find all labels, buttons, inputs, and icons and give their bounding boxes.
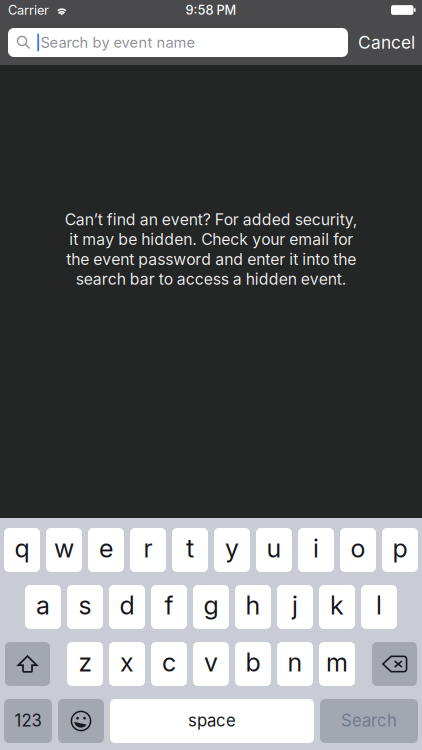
staticText: h: [245, 590, 260, 621]
staticText: Can’t find an event? For added security,…: [64, 210, 357, 288]
staticText: 123: [14, 710, 41, 731]
button[interactable]: x: [109, 642, 145, 686]
staticText: q: [14, 533, 29, 564]
button[interactable]: o: [340, 528, 376, 572]
button[interactable]: space: [110, 699, 314, 743]
staticText: p: [392, 533, 407, 564]
button[interactable]: y: [214, 528, 250, 572]
staticText: b: [245, 647, 260, 678]
button[interactable]: s: [67, 585, 103, 629]
staticText: o: [350, 533, 365, 564]
staticText: f: [164, 590, 173, 621]
staticText: Carrier: [8, 2, 49, 18]
staticText: k: [330, 590, 344, 621]
button[interactable]: w: [46, 528, 82, 572]
button[interactable]: r: [130, 528, 166, 572]
button[interactable]: h: [235, 585, 271, 629]
button[interactable]: g: [193, 585, 229, 629]
button[interactable]: d: [109, 585, 145, 629]
button[interactable]: Shift: [5, 642, 50, 686]
staticText: space: [188, 710, 236, 731]
button[interactable]: b: [235, 642, 271, 686]
button[interactable]: Cancel: [358, 27, 415, 57]
button[interactable]: l: [361, 585, 397, 629]
staticText: d: [119, 590, 134, 621]
staticText: x: [120, 647, 134, 678]
button[interactable]: n: [277, 642, 313, 686]
button[interactable]: u: [256, 528, 292, 572]
button[interactable]: v: [193, 642, 229, 686]
button[interactable]: t: [172, 528, 208, 572]
button[interactable]: a: [25, 585, 61, 629]
staticText: l: [376, 590, 382, 621]
button[interactable]: 123: [4, 699, 52, 743]
staticText: j: [292, 590, 298, 621]
staticText: Cancel: [358, 32, 415, 53]
button[interactable]: c: [151, 642, 187, 686]
staticText: e: [99, 533, 113, 564]
staticText: u: [266, 533, 281, 564]
staticText: a: [36, 590, 50, 621]
button[interactable]: f: [151, 585, 187, 629]
staticText: v: [204, 647, 218, 678]
staticText: n: [287, 647, 302, 678]
staticText: Search by event name: [41, 34, 196, 51]
staticText: w: [54, 533, 74, 564]
staticText: r: [143, 533, 152, 564]
staticText: z: [78, 647, 91, 678]
button[interactable]: Emoji keyboard: [58, 699, 104, 743]
staticText: i: [313, 533, 319, 564]
staticText: s: [78, 590, 91, 621]
button[interactable]: k: [319, 585, 355, 629]
staticText: 9:58 PM: [185, 2, 236, 18]
button[interactable]: Search: [320, 699, 418, 743]
staticText: t: [186, 533, 194, 564]
staticText: m: [326, 647, 348, 678]
staticText: g: [203, 590, 218, 621]
staticText: c: [162, 647, 176, 678]
button[interactable]: m: [319, 642, 355, 686]
button[interactable]: z: [67, 642, 103, 686]
button[interactable]: Delete: [372, 642, 417, 686]
staticText: y: [225, 533, 239, 564]
staticText: Search: [341, 710, 397, 731]
button[interactable]: j: [277, 585, 313, 629]
button[interactable]: p: [382, 528, 418, 572]
button[interactable]: i: [298, 528, 334, 572]
button[interactable]: e: [88, 528, 124, 572]
button[interactable]: q: [4, 528, 40, 572]
